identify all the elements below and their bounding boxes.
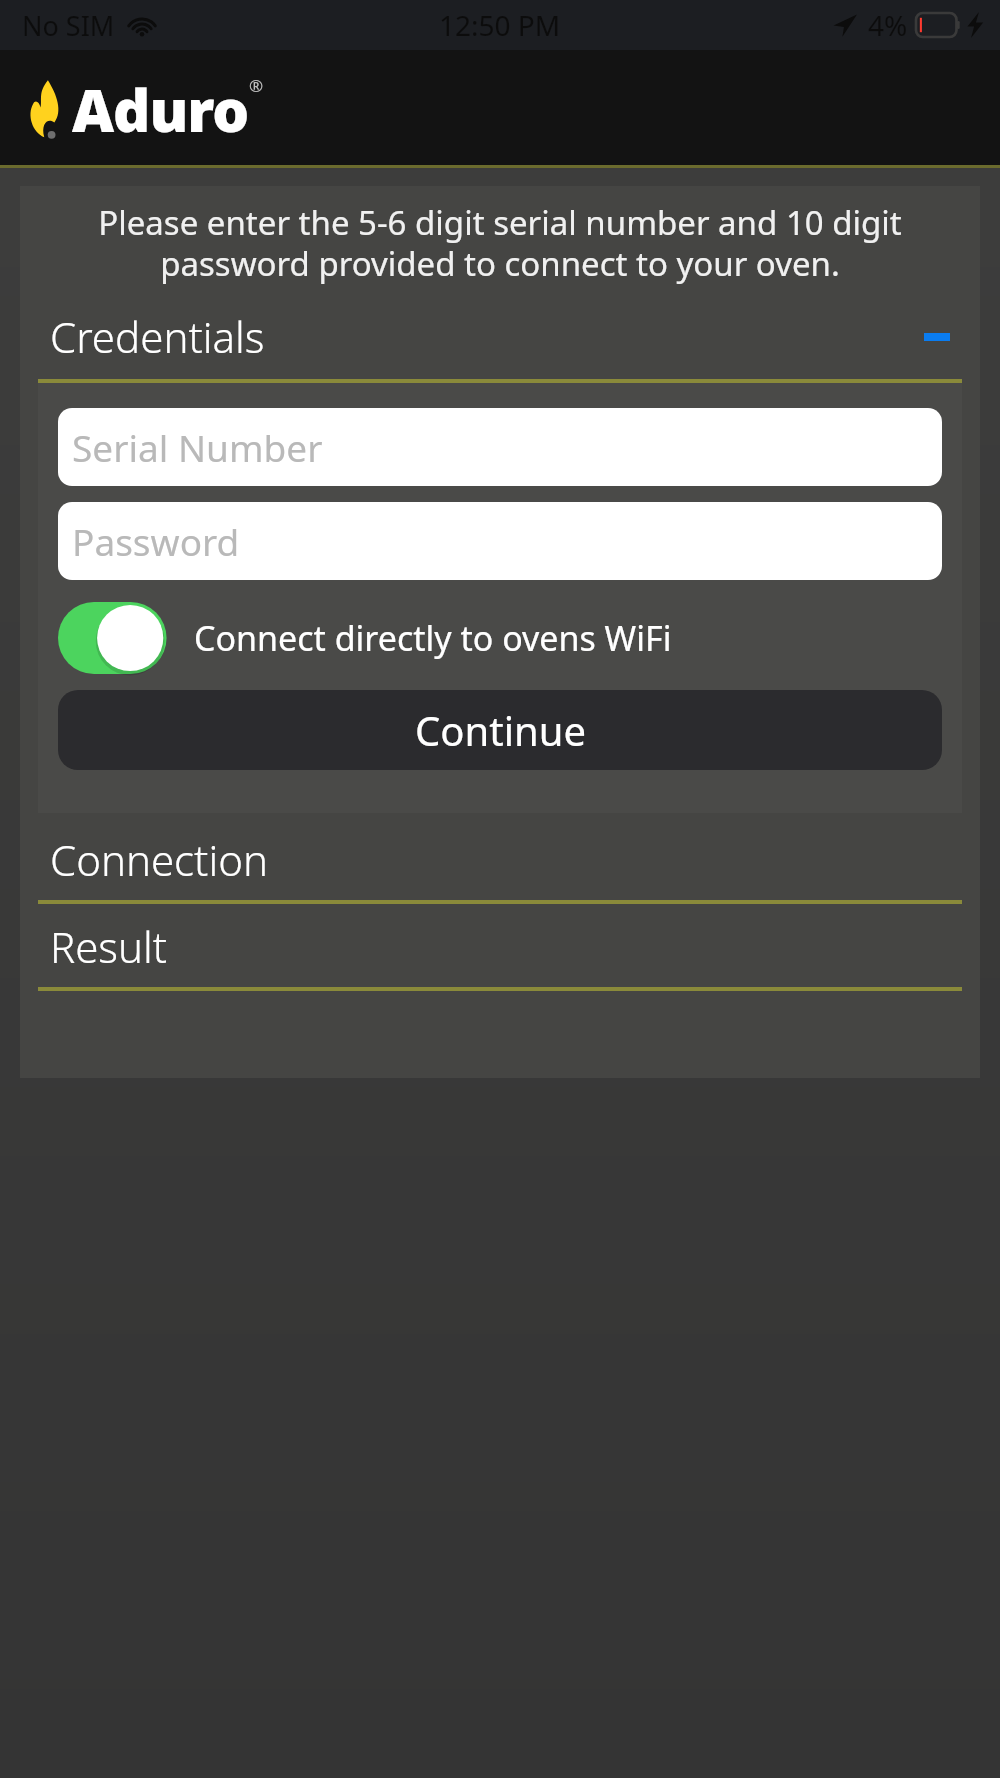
button[interactable]: Credentials bbox=[20, 308, 980, 365]
button[interactable]: Password bbox=[58, 502, 942, 580]
staticText: 12:50 PM bbox=[439, 6, 561, 44]
staticText: Credentials bbox=[50, 308, 265, 365]
staticText: Aduro bbox=[72, 70, 249, 149]
button[interactable]: Serial Number bbox=[58, 408, 942, 486]
staticText: 4% bbox=[868, 6, 908, 44]
staticText: Connect directly to ovens WiFi bbox=[194, 615, 672, 661]
button[interactable]: Result bbox=[20, 918, 980, 975]
button[interactable]: Continue bbox=[58, 690, 942, 770]
button[interactable]: Connect directly to ovens WiFi toggle bbox=[58, 602, 672, 674]
button[interactable]: Aduro bbox=[24, 70, 264, 149]
staticText: Please enter the 5-6 digit serial number… bbox=[50, 200, 950, 286]
staticText: Continue bbox=[415, 703, 586, 757]
staticText: ® bbox=[249, 74, 264, 97]
staticText: Password bbox=[72, 516, 240, 566]
button[interactable]: Connection bbox=[20, 831, 980, 888]
staticText: Serial Number bbox=[72, 422, 323, 472]
staticText: Connection bbox=[50, 831, 268, 888]
staticText: Result bbox=[50, 918, 168, 975]
staticText: No SIM bbox=[22, 7, 115, 44]
button[interactable]: Connect directly to ovens WiFi toggle bbox=[58, 602, 176, 674]
